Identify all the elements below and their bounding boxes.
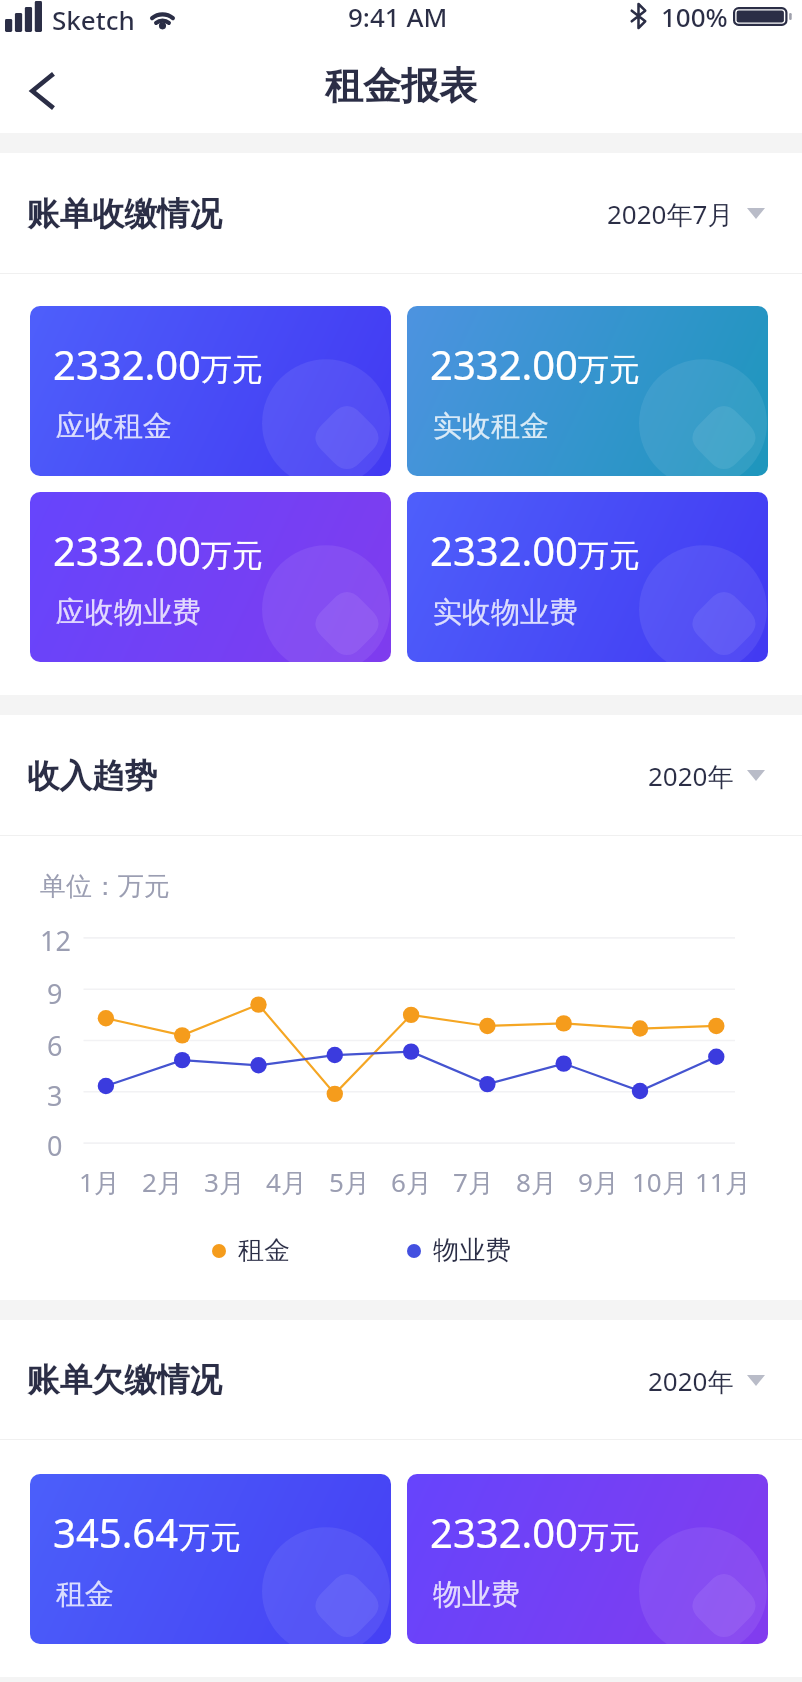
staticText: 万元 — [201, 350, 263, 389]
staticText: 100% — [661, 0, 728, 34]
staticText: 2020年7月 — [607, 196, 734, 232]
staticText: 12 — [40, 922, 71, 956]
button[interactable]: 2332.00 — [407, 306, 768, 476]
staticText: 2020年 — [648, 1363, 734, 1399]
staticText: 11月 — [695, 1164, 751, 1200]
staticText: 2332.00 — [430, 523, 578, 577]
button[interactable]: Back — [6, 48, 78, 133]
staticText: 9 — [47, 975, 63, 1009]
staticText: 9月 — [578, 1164, 619, 1200]
staticText: 万元 — [578, 1518, 640, 1557]
staticText: 租金报表 — [325, 62, 477, 110]
staticText: 8月 — [516, 1164, 557, 1200]
staticText: 应收物业费 — [56, 594, 201, 631]
staticText: 5月 — [329, 1164, 370, 1200]
staticText: 单位：万元 — [40, 870, 170, 903]
staticText: 租金 — [238, 1234, 290, 1267]
staticText: 万元 — [179, 1518, 241, 1557]
staticText: 物业费 — [433, 1576, 520, 1613]
staticText: 应收租金 — [56, 408, 172, 445]
staticText: 2332.00 — [53, 337, 201, 391]
staticText: 1月 — [79, 1164, 120, 1200]
staticText: 账单欠缴情况 — [27, 1360, 222, 1401]
staticText: 3月 — [204, 1164, 245, 1200]
staticText: 收入趋势 — [27, 756, 157, 797]
staticText: 实收租金 — [433, 408, 549, 445]
staticText: 9:41 AM — [348, 0, 448, 34]
staticText: 3 — [47, 1077, 63, 1111]
staticText: 0 — [47, 1127, 63, 1161]
button[interactable]: 345.64 — [30, 1474, 391, 1644]
staticText: 6 — [47, 1027, 63, 1061]
staticText: 345.64 — [53, 1505, 179, 1559]
staticText: 物业费 — [433, 1234, 511, 1267]
staticText: 2020年 — [648, 758, 734, 794]
staticText: 2332.00 — [430, 1505, 578, 1559]
staticText: 租金 — [56, 1576, 114, 1613]
staticText: 2月 — [142, 1164, 183, 1200]
button[interactable]: 2332.00 — [407, 492, 768, 662]
staticText: 6月 — [391, 1164, 432, 1200]
button[interactable]: 2332.00 — [30, 492, 391, 662]
staticText: 2332.00 — [430, 337, 578, 391]
staticText: 实收物业费 — [433, 594, 578, 631]
staticText: 10月 — [632, 1164, 688, 1200]
button[interactable]: 2020年 — [648, 757, 765, 793]
staticText: 2332.00 — [53, 523, 201, 577]
staticText: Sketch — [52, 2, 135, 37]
staticText: 7月 — [453, 1164, 494, 1200]
button[interactable]: 2332.00 — [407, 1474, 768, 1644]
button[interactable]: 2020年7月 — [607, 195, 765, 231]
button[interactable]: 2332.00 — [30, 306, 391, 476]
staticText: 万元 — [578, 536, 640, 575]
staticText: 4月 — [266, 1164, 307, 1200]
staticText: 万元 — [201, 536, 263, 575]
staticText: 万元 — [578, 350, 640, 389]
staticText: 账单收缴情况 — [27, 194, 222, 235]
button[interactable]: 2020年 — [648, 1362, 765, 1398]
